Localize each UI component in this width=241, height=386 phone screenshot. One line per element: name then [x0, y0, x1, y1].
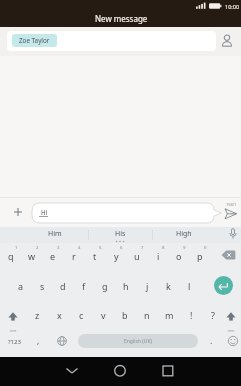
button[interactable]: y [106, 245, 126, 267]
staticText: o [176, 250, 182, 262]
staticText: u [134, 250, 140, 262]
button[interactable]: t [85, 245, 105, 267]
button[interactable] [222, 205, 240, 222]
button[interactable]: l [179, 275, 199, 297]
staticText: New message [95, 13, 148, 24]
button[interactable]: p [190, 245, 210, 267]
staticText: . [210, 335, 213, 347]
button[interactable]: b [115, 304, 135, 326]
staticText: p [197, 250, 203, 262]
staticText: i [157, 250, 160, 262]
staticText: f [82, 280, 86, 292]
button[interactable] [221, 305, 241, 335]
button[interactable]: q [1, 245, 21, 267]
button[interactable] [225, 333, 241, 349]
button[interactable]: f [74, 275, 94, 297]
button[interactable]: His [92, 225, 148, 243]
button[interactable]: z [27, 304, 47, 326]
staticText: 5 [99, 244, 102, 250]
staticText: 1 [15, 244, 18, 250]
staticText: l [188, 280, 191, 292]
staticText: ! [190, 309, 193, 321]
staticText: r [72, 250, 76, 262]
staticText: 10:00 [225, 3, 240, 10]
staticText: x [57, 309, 62, 321]
button[interactable]: g [95, 275, 115, 297]
staticText: 8 [162, 244, 165, 250]
staticText: 4 [78, 244, 81, 250]
staticText: 0 [204, 244, 207, 250]
button[interactable]: Zoe Taylor [12, 34, 57, 47]
staticText: 6 [120, 244, 123, 250]
button[interactable]: Him [25, 225, 85, 243]
button[interactable]: j [137, 275, 157, 297]
staticText: English (UK) [124, 338, 153, 345]
staticText: j [146, 280, 149, 292]
staticText: His [115, 229, 126, 239]
staticText: ? [211, 309, 215, 321]
staticText: v [101, 309, 106, 321]
button[interactable]: English (UK) [78, 334, 198, 348]
staticText: 2 [36, 244, 39, 250]
button[interactable]: m [159, 304, 179, 326]
staticText: ?123 [8, 338, 21, 346]
button[interactable] [104, 357, 136, 385]
button[interactable]: x [49, 304, 69, 326]
button[interactable]: v [93, 304, 113, 326]
staticText: e [50, 250, 56, 262]
button[interactable]: ?123 [1, 332, 27, 352]
staticText: 3 [57, 244, 60, 250]
staticText: k [166, 280, 171, 292]
button[interactable]: c [71, 304, 91, 326]
staticText: , [37, 335, 40, 347]
button[interactable] [152, 357, 184, 385]
button[interactable]: w [22, 245, 42, 267]
button[interactable]: i [148, 245, 168, 267]
button[interactable] [218, 245, 240, 265]
button[interactable]: r [64, 245, 84, 267]
staticText: b [122, 309, 128, 321]
button[interactable]: e [43, 245, 63, 267]
button[interactable] [219, 33, 235, 49]
button[interactable]: u [127, 245, 147, 267]
button[interactable]: ? [203, 304, 223, 326]
staticText: g [102, 280, 108, 292]
button[interactable]: , [30, 331, 46, 351]
button[interactable]: d [53, 275, 73, 297]
staticText: High [176, 229, 192, 239]
button[interactable]: . [203, 331, 219, 351]
button[interactable] [31, 202, 223, 224]
button[interactable] [3, 305, 23, 335]
staticText: d [60, 280, 66, 292]
button[interactable]: h [116, 275, 136, 297]
button[interactable] [54, 333, 70, 349]
staticText: w [28, 250, 36, 262]
staticText: n [144, 309, 150, 321]
staticText: Zoe Taylor [19, 36, 50, 45]
staticText: 158/1 [226, 202, 237, 207]
staticText: s [40, 280, 45, 292]
staticText: 7 [141, 244, 144, 250]
button[interactable]: High [154, 225, 214, 243]
button[interactable] [214, 276, 233, 295]
staticText: a [18, 280, 24, 292]
button[interactable]: k [158, 275, 178, 297]
button[interactable]: o [169, 245, 189, 267]
button[interactable]: n [137, 304, 157, 326]
button[interactable]: s [32, 275, 52, 297]
staticText: Hi [41, 208, 48, 217]
button[interactable] [225, 226, 241, 242]
staticText: m [165, 309, 174, 321]
button[interactable] [56, 357, 88, 385]
button[interactable] [9, 203, 27, 221]
staticText: y [114, 250, 119, 262]
staticText: z [35, 309, 40, 321]
button[interactable] [7, 31, 216, 51]
staticText: Him [48, 229, 62, 239]
staticText: 9 [183, 244, 186, 250]
staticText: c [79, 309, 84, 321]
staticText: t [93, 250, 97, 262]
button[interactable]: ! [181, 304, 201, 326]
button[interactable]: a [11, 275, 31, 297]
staticText: h [123, 280, 129, 292]
